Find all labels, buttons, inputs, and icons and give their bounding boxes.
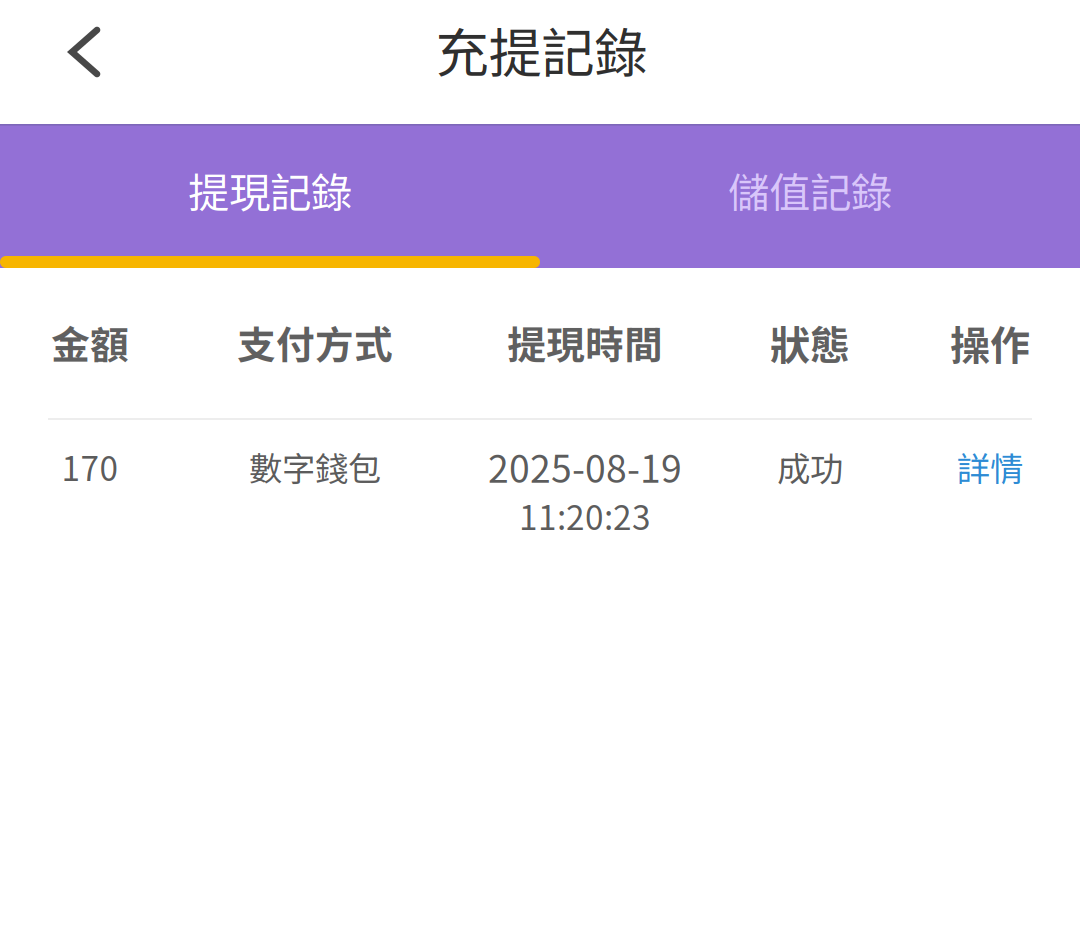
staticText: 狀態 [770, 313, 850, 371]
button[interactable]: 提現記錄 [0, 124, 540, 256]
button[interactable]: Back [28, 0, 140, 104]
staticText: 170 [61, 442, 118, 491]
staticText: 支付方式 [237, 314, 393, 370]
staticText: 詳情 [957, 442, 1023, 491]
staticText: 提現時間 [507, 314, 663, 370]
staticText: 充提記錄 [435, 11, 647, 88]
staticText: 提現記錄 [188, 160, 352, 220]
staticText: 操作 [950, 313, 1030, 371]
staticText: 數字錢包 [249, 442, 381, 491]
staticText: 2025-08-19 [488, 439, 682, 494]
staticText: 成功 [777, 442, 843, 491]
staticText: 11:20:23 [519, 491, 651, 540]
staticText: 儲值記錄 [728, 160, 892, 220]
staticText: 金額 [51, 314, 129, 370]
button[interactable]: 儲值記錄 [540, 124, 1080, 256]
button[interactable]: 詳情 [930, 431, 1050, 501]
